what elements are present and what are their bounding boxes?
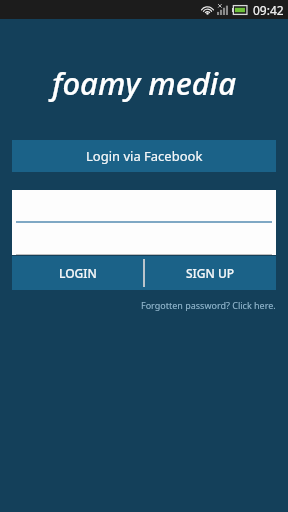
staticText: Login via Facebook [86, 147, 203, 165]
staticText: LOGIN [59, 265, 97, 281]
button[interactable] [12, 190, 276, 223]
button[interactable]: SIGN UP [145, 256, 276, 290]
button[interactable] [12, 223, 276, 255]
button[interactable]: LOGIN [12, 256, 143, 290]
staticText: foamy media [52, 62, 236, 104]
staticText: SIGN UP [186, 265, 235, 281]
button[interactable]: Forgotten password? Click here. [141, 299, 276, 311]
staticText: Forgotten password? Click here. [141, 299, 276, 311]
button[interactable]: Login via Facebook [12, 140, 276, 172]
staticText: 09:42 [253, 2, 284, 18]
